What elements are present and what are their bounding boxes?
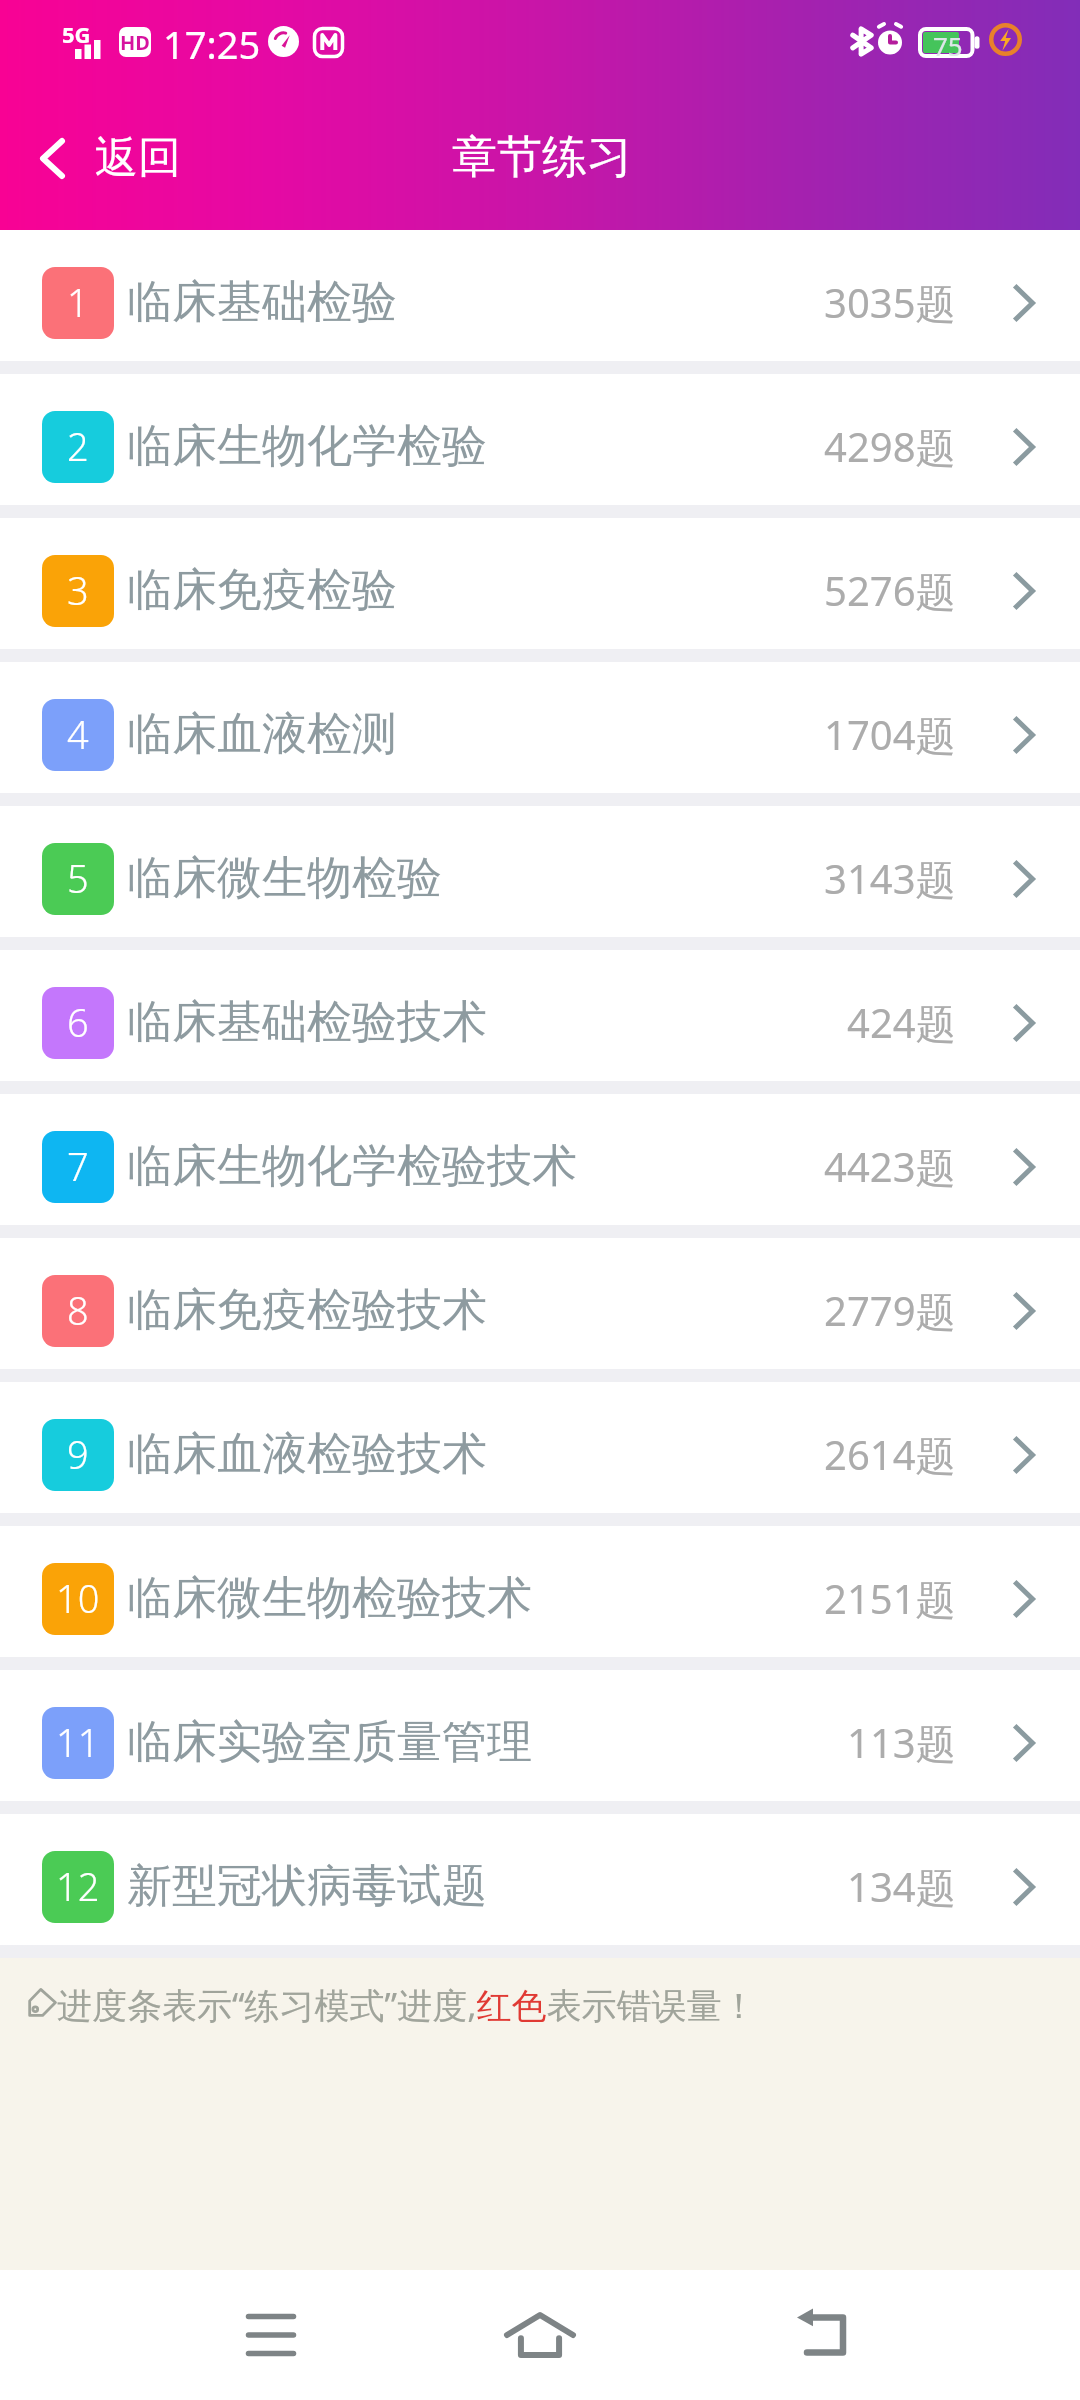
button[interactable]: 8	[0, 1238, 1080, 1369]
staticText: 17:25	[163, 18, 261, 70]
staticText: 2151题	[824, 1571, 956, 1626]
staticText: 临床微生物检验技术	[127, 1570, 532, 1627]
button[interactable]: 7	[0, 1094, 1080, 1225]
staticText: 75	[933, 28, 963, 63]
staticText: 134题	[847, 1859, 956, 1914]
staticText: 8	[67, 1284, 89, 1336]
staticText: 4423题	[824, 1139, 956, 1194]
staticText: 临床生物化学检验技术	[127, 1138, 577, 1195]
staticText: 12	[56, 1860, 100, 1912]
staticText: 1704题	[824, 707, 956, 762]
staticText: 424题	[847, 995, 956, 1050]
staticText: 11	[56, 1716, 100, 1768]
staticText: 113题	[847, 1715, 956, 1770]
staticText: 2	[67, 420, 89, 472]
staticText: 6	[67, 996, 89, 1048]
button[interactable]: 12	[0, 1814, 1080, 1945]
button[interactable]: Recent apps	[181, 2270, 361, 2400]
staticText: 新型冠状病毒试题	[127, 1858, 487, 1915]
button[interactable]: 6	[0, 950, 1080, 1081]
button[interactable]: 2	[0, 374, 1080, 505]
button[interactable]: 返回	[26, 125, 199, 191]
staticText: 进度条表示“练习模式”进度,红色表示错误量！	[57, 1981, 757, 2029]
staticText: 临床微生物检验	[127, 850, 442, 907]
staticText: 临床实验室质量管理	[127, 1714, 532, 1771]
staticText: 临床基础检验	[127, 274, 397, 331]
staticText: 临床免疫检验技术	[127, 1282, 487, 1339]
staticText: 返回	[95, 131, 181, 185]
staticText: 临床血液检测	[127, 706, 397, 763]
staticText: 10	[56, 1572, 100, 1624]
staticText: 临床免疫检验	[127, 562, 397, 619]
staticText: HD	[120, 29, 150, 56]
button[interactable]: 10	[0, 1526, 1080, 1657]
button[interactable]: Back	[732, 2270, 912, 2400]
staticText: 临床血液检验技术	[127, 1426, 487, 1483]
button[interactable]: Home	[450, 2270, 630, 2400]
staticText: 5276题	[824, 563, 956, 618]
button[interactable]: 9	[0, 1382, 1080, 1513]
staticText: 3143题	[824, 851, 956, 906]
staticText: 2779题	[824, 1283, 956, 1338]
staticText: 章节练习	[452, 129, 632, 186]
staticText: 4298题	[824, 419, 956, 474]
button[interactable]: 1	[0, 230, 1080, 361]
staticText: 临床基础检验技术	[127, 994, 487, 1051]
staticText: 4	[67, 708, 89, 760]
button[interactable]: 4	[0, 662, 1080, 793]
staticText: 临床生物化学检验	[127, 418, 487, 475]
button[interactable]: 3	[0, 518, 1080, 649]
button[interactable]: 5	[0, 806, 1080, 937]
staticText: 3035题	[824, 275, 956, 330]
staticText: 5	[67, 852, 89, 904]
staticText: 3	[67, 564, 89, 616]
staticText: 7	[67, 1140, 89, 1192]
staticText: 5G	[62, 19, 91, 49]
staticText: 1	[67, 276, 89, 328]
button[interactable]: 11	[0, 1670, 1080, 1801]
staticText: 9	[67, 1428, 89, 1480]
staticText: 2614题	[824, 1427, 956, 1482]
